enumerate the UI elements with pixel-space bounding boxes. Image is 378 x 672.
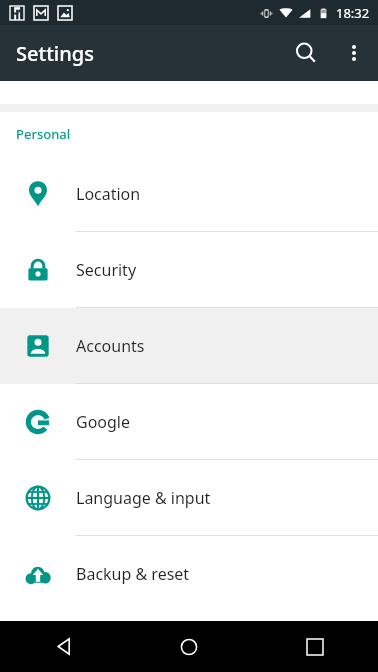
staticText: Settings: [16, 40, 94, 67]
staticText: Accounts: [76, 335, 145, 357]
button[interactable]: Language & input: [0, 460, 378, 536]
button[interactable]: Home: [126, 621, 252, 672]
staticText: Backup & reset: [76, 563, 190, 585]
staticText: Location: [76, 183, 141, 205]
staticText: Personal: [16, 125, 71, 143]
staticText: 18:32: [336, 4, 370, 22]
button[interactable]: Google: [0, 384, 378, 460]
staticText: Security: [76, 259, 137, 281]
button[interactable]: Search: [282, 29, 330, 77]
button[interactable]: Accounts: [0, 308, 378, 384]
staticText: Google: [76, 411, 131, 433]
button[interactable]: Backup & reset: [0, 536, 378, 612]
button[interactable]: More options: [330, 29, 378, 77]
button[interactable]: Location: [0, 156, 378, 232]
button[interactable]: Back: [0, 621, 126, 672]
button[interactable]: Recent apps: [252, 621, 378, 672]
button[interactable]: Security: [0, 232, 378, 308]
staticText: Language & input: [76, 487, 211, 509]
